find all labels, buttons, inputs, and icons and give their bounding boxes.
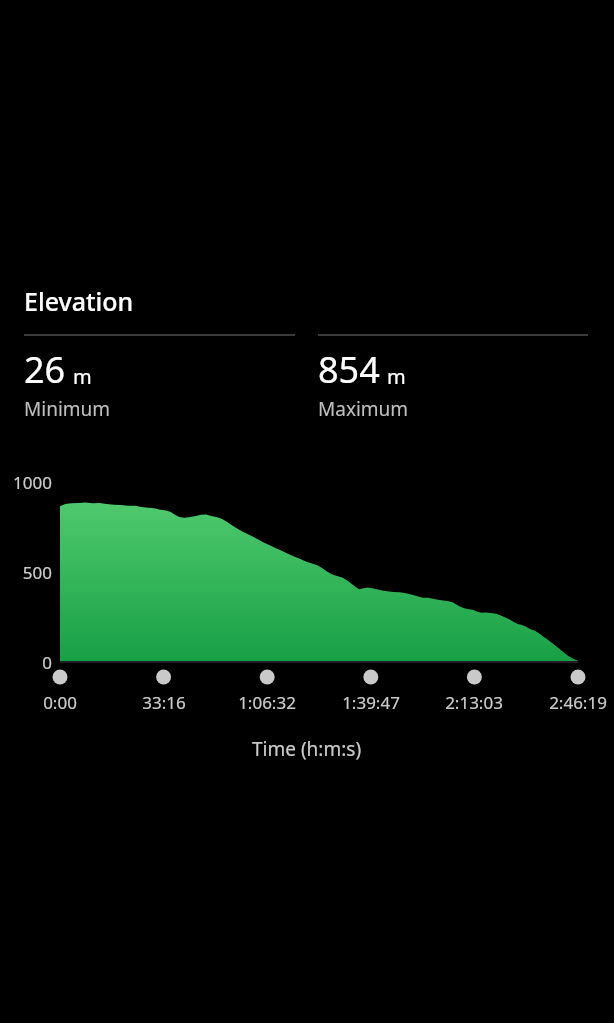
- staticText: 26: [24, 345, 66, 394]
- staticText: 0: [0, 651, 52, 674]
- staticText: Maximum: [318, 396, 409, 422]
- staticText: m: [387, 363, 406, 390]
- staticText: 1:06:32: [212, 691, 322, 714]
- staticText: Elevation: [24, 284, 134, 318]
- staticText: 1000: [0, 471, 52, 494]
- other: Elevation profile chart: [0, 485, 614, 765]
- staticText: m: [73, 363, 92, 390]
- button[interactable]: Elevation profile chart: [0, 485, 614, 765]
- staticText: Time (h:m:s): [252, 736, 362, 762]
- staticText: 1:39:47: [316, 691, 426, 714]
- button[interactable]: 26: [24, 334, 295, 422]
- staticText: 33:16: [109, 691, 219, 714]
- staticText: Minimum: [24, 396, 111, 422]
- button[interactable]: 854: [318, 334, 588, 422]
- staticText: 854: [318, 345, 380, 394]
- staticText: 2:46:19: [523, 691, 614, 714]
- staticText: 0:00: [5, 691, 115, 714]
- staticText: 500: [0, 561, 52, 584]
- staticText: 2:13:03: [419, 691, 529, 714]
